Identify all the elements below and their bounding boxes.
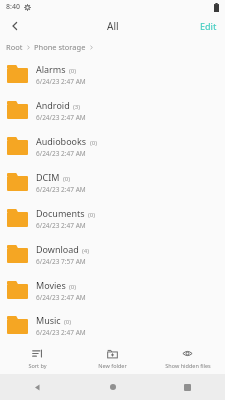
- staticText: (0): [64, 318, 72, 326]
- button[interactable]: Download: [0, 236, 225, 272]
- staticText: All: [107, 19, 119, 33]
- button[interactable]: Recents: [150, 374, 225, 400]
- button[interactable]: Edit: [200, 20, 217, 32]
- staticText: Show hidden files: [165, 362, 211, 369]
- staticText: DCIM: [36, 171, 60, 183]
- staticText: Android: [36, 99, 70, 111]
- button[interactable]: Music: [0, 308, 225, 342]
- staticText: Root: [6, 42, 23, 52]
- staticText: 6/24/23 2:47 AM: [36, 185, 86, 194]
- button[interactable]: New folder: [75, 348, 150, 369]
- button[interactable]: Android: [0, 92, 225, 128]
- staticText: Alarms: [36, 63, 66, 75]
- staticText: (0): [69, 283, 77, 291]
- staticText: 8:40: [6, 2, 20, 12]
- staticText: (0): [69, 67, 77, 75]
- button[interactable]: Root: [6, 42, 23, 52]
- staticText: 6/24/23 2:47 AM: [36, 113, 86, 122]
- button[interactable]: Home: [75, 374, 150, 400]
- button[interactable]: Phone storage: [34, 42, 86, 52]
- staticText: Download: [36, 243, 79, 255]
- staticText: 6/24/23 2:47 AM: [36, 328, 86, 337]
- staticText: Music: [36, 314, 61, 326]
- button[interactable]: Back: [4, 15, 26, 37]
- staticText: (3): [73, 103, 81, 111]
- staticText: Audiobooks: [36, 135, 87, 147]
- staticText: (0): [88, 211, 96, 219]
- button[interactable]: Sort by: [0, 348, 75, 369]
- staticText: Movies: [36, 279, 66, 291]
- staticText: Documents: [36, 207, 85, 219]
- staticText: 6/24/23 2:47 AM: [36, 149, 86, 158]
- button[interactable]: Back: [0, 374, 75, 400]
- staticText: (0): [90, 139, 98, 147]
- staticText: 6/24/23 2:47 AM: [36, 293, 86, 302]
- staticText: Edit: [200, 20, 217, 32]
- button[interactable]: Show hidden files: [150, 348, 225, 369]
- button[interactable]: Documents: [0, 200, 225, 236]
- staticText: 6/24/23 7:57 AM: [36, 257, 86, 266]
- staticText: (0): [63, 175, 71, 183]
- staticText: Sort by: [28, 362, 47, 369]
- staticText: 6/24/23 2:47 AM: [36, 77, 86, 86]
- staticText: Phone storage: [34, 42, 86, 52]
- button[interactable]: Audiobooks: [0, 128, 225, 164]
- button[interactable]: Movies: [0, 272, 225, 308]
- button[interactable]: Alarms: [0, 56, 225, 92]
- staticText: 6/24/23 2:47 AM: [36, 221, 86, 230]
- staticText: New folder: [98, 362, 127, 369]
- staticText: (4): [82, 247, 90, 255]
- button[interactable]: DCIM: [0, 164, 225, 200]
